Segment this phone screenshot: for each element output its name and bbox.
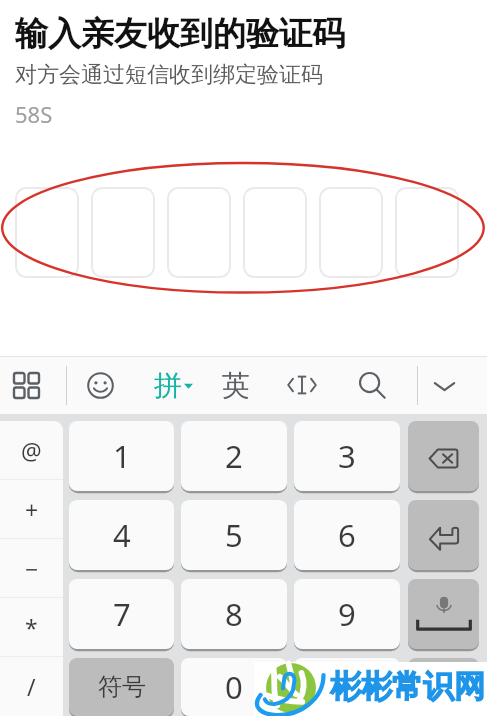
staticText: 5 bbox=[225, 514, 243, 556]
button[interactable]: + bbox=[0, 480, 63, 539]
button[interactable]: 2 bbox=[181, 421, 287, 491]
button[interactable] bbox=[91, 187, 155, 278]
staticText: − bbox=[25, 553, 39, 584]
staticText: . bbox=[343, 666, 352, 708]
staticText: 7 bbox=[113, 593, 131, 635]
staticText: 4 bbox=[113, 514, 131, 556]
button[interactable]: 6 bbox=[294, 500, 400, 570]
button[interactable]: 英 bbox=[212, 356, 259, 414]
staticText: * bbox=[25, 612, 38, 643]
button[interactable]: / bbox=[0, 657, 63, 716]
staticText: 1 bbox=[113, 435, 131, 477]
staticText: @ bbox=[21, 435, 42, 466]
button[interactable]: − bbox=[0, 539, 63, 598]
button[interactable] bbox=[15, 187, 79, 278]
button[interactable]: 1 bbox=[69, 421, 174, 491]
button[interactable] bbox=[319, 187, 383, 278]
button[interactable]: Emoji bbox=[67, 356, 134, 414]
button[interactable]: 7 bbox=[69, 579, 174, 649]
button[interactable]: Space bbox=[408, 658, 479, 716]
staticText: 3 bbox=[338, 435, 356, 477]
staticText: 8 bbox=[225, 593, 243, 635]
button[interactable]: 拼 bbox=[134, 356, 212, 414]
button[interactable]: 8 bbox=[181, 579, 287, 649]
staticText: 对方会通过短信收到绑定验证码 bbox=[15, 61, 323, 89]
staticText: 58S bbox=[15, 99, 53, 129]
button[interactable]: 9 bbox=[294, 579, 400, 649]
button[interactable] bbox=[395, 187, 459, 278]
button[interactable]: Keyboard layouts bbox=[0, 356, 53, 414]
staticText: 彬彬常识网 bbox=[330, 667, 485, 706]
staticText: 6 bbox=[338, 514, 356, 556]
button[interactable]: @ bbox=[0, 421, 63, 480]
button[interactable]: 3 bbox=[294, 421, 400, 491]
staticText: 2 bbox=[225, 435, 243, 477]
staticText: + bbox=[25, 494, 39, 525]
staticText: 输入亲友收到的验证码 bbox=[15, 13, 345, 55]
button[interactable]: Enter bbox=[408, 500, 479, 570]
button[interactable]: 5 bbox=[181, 500, 287, 570]
button[interactable]: 0 bbox=[181, 658, 287, 716]
button[interactable]: * bbox=[0, 598, 63, 657]
button[interactable]: . bbox=[294, 658, 400, 716]
staticText: 符号 bbox=[98, 672, 146, 702]
staticText: 9 bbox=[338, 593, 356, 635]
staticText: 英 bbox=[222, 368, 250, 403]
staticText: 0 bbox=[225, 666, 243, 708]
button[interactable]: Move cursor bbox=[267, 356, 337, 414]
button[interactable]: Search bbox=[337, 356, 407, 414]
button[interactable]: 符号 bbox=[69, 658, 174, 716]
button[interactable]: Hide keyboard bbox=[418, 356, 471, 414]
button[interactable]: Delete bbox=[408, 421, 479, 491]
staticText: 拼 bbox=[154, 368, 182, 403]
button[interactable]: Voice input bbox=[408, 579, 479, 649]
button[interactable]: 4 bbox=[69, 500, 174, 570]
button[interactable] bbox=[167, 187, 231, 278]
staticText: / bbox=[27, 671, 36, 702]
button[interactable] bbox=[243, 187, 307, 278]
